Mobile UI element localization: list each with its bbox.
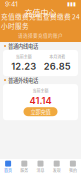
button[interactable]: 立即充值: [23, 107, 57, 116]
staticText: 服务: [20, 168, 28, 173]
button[interactable]: 发现: [49, 161, 65, 173]
staticText: 12.23: [11, 61, 36, 72]
staticText: 9:41: [5, 0, 18, 8]
button[interactable]: 服务: [16, 161, 32, 173]
staticText: 普通内线电话: [8, 42, 38, 50]
staticText: 当前余额: [32, 88, 48, 94]
staticText: 消息: [36, 168, 44, 173]
staticText: 充值缴费充值查费缴费 24小时服务: [1, 11, 80, 31]
staticText: ▮▮▮: [67, 1, 76, 7]
staticText: 请选择要充值的账户: [18, 32, 63, 39]
staticText: 充值中心: [24, 7, 56, 18]
staticText: 立即充值: [30, 108, 50, 115]
button[interactable]: 首页: [0, 161, 16, 173]
staticText: 26.85: [44, 61, 71, 72]
staticText: 普通外线电话: [8, 76, 38, 84]
staticText: 当前余额: [16, 54, 32, 60]
staticText: 发现: [53, 168, 61, 173]
staticText: 41.14: [29, 95, 51, 106]
staticText: 首页: [4, 168, 12, 173]
button[interactable]: 我的: [65, 161, 81, 173]
staticText: 本月消费: [49, 54, 65, 60]
staticText: 我的: [69, 168, 77, 173]
button[interactable]: 消息: [32, 161, 49, 173]
